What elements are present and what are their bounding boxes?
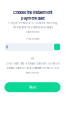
- staticText: every month.: [25, 71, 39, 74]
- button[interactable]: Next: [4, 82, 60, 92]
- staticText: Pick a date: [26, 37, 39, 40]
- staticText: default data for your payment on 1st or …: [6, 67, 58, 70]
- button[interactable]: Confirm date: [54, 44, 60, 50]
- button[interactable]: [5, 43, 53, 51]
- staticText: OR: [30, 57, 34, 60]
- staticText: the day after you receive your salary: [12, 26, 52, 29]
- staticText: Choose the installment: [13, 10, 52, 15]
- staticText: payment date: [20, 16, 44, 21]
- staticText: Click 'Next' and a default date will be …: [5, 62, 59, 65]
- staticText: each month.: [25, 30, 39, 33]
- staticText: It might be helpful to consider choosing: [7, 21, 57, 24]
- staticText: Next: [29, 85, 36, 89]
